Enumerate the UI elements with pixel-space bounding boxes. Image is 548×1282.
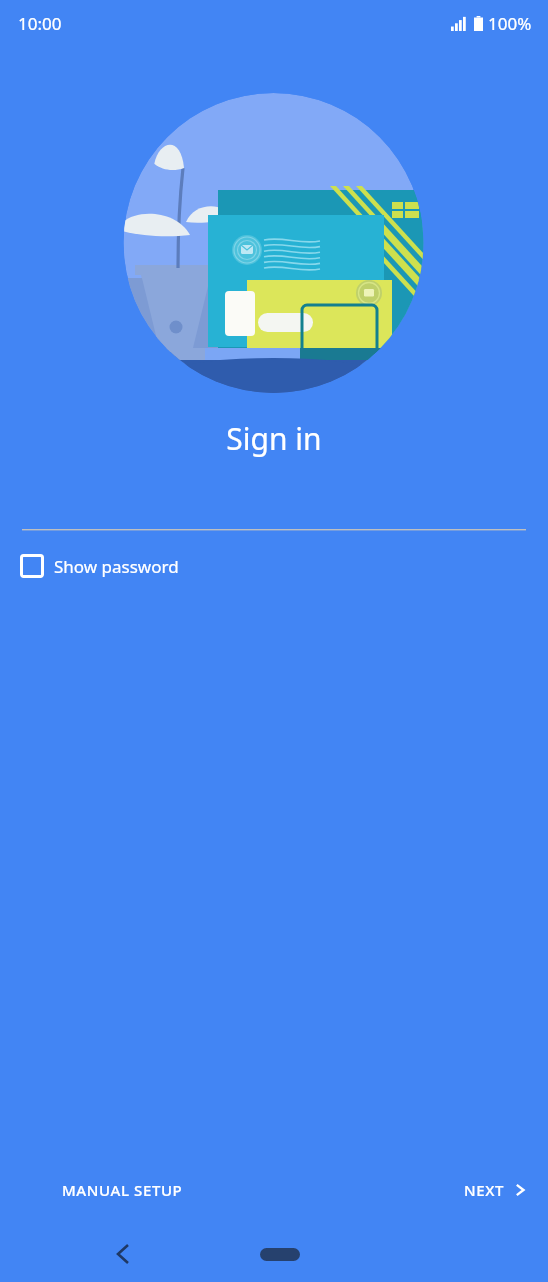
button[interactable]: Back (100, 1232, 144, 1276)
staticText: 10:00 (18, 12, 62, 35)
button[interactable]: NEXT (454, 1170, 538, 1210)
button[interactable]: Show password (16, 550, 183, 582)
button[interactable] (22, 508, 526, 530)
button[interactable]: Home (260, 1248, 300, 1261)
staticText: NEXT (464, 1180, 504, 1200)
staticText: 100% (488, 12, 532, 35)
staticText: MANUAL SETUP (62, 1180, 183, 1200)
staticText: Sign in (0, 418, 548, 459)
staticText: Show password (54, 555, 179, 578)
button[interactable]: MANUAL SETUP (52, 1170, 193, 1210)
